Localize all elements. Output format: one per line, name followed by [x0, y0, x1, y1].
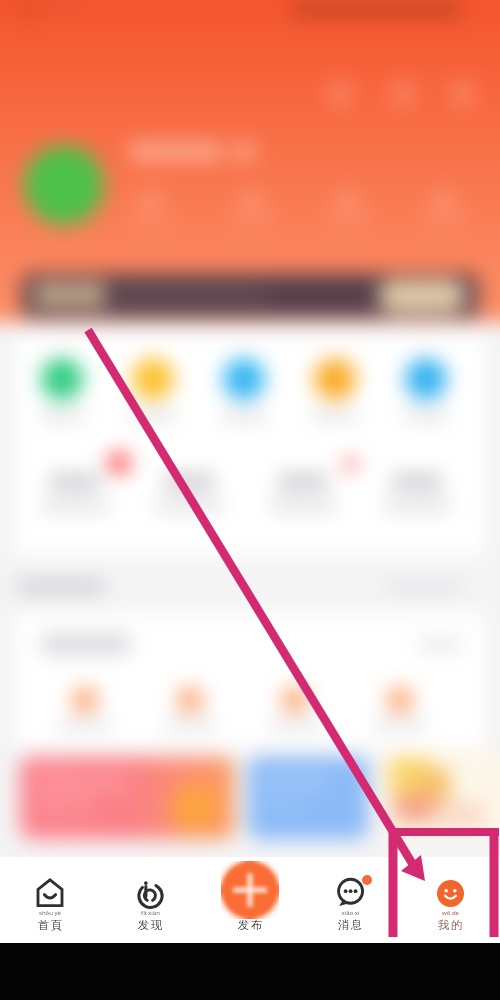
staticText: 发布: [237, 918, 263, 932]
staticText: 发现: [137, 918, 163, 932]
staticText: wǒ de: [442, 909, 459, 917]
staticText: 首頁: [37, 918, 63, 932]
staticText: fā xiàn: [141, 909, 160, 917]
staticText: 我的: [437, 918, 463, 932]
button[interactable]: fā bù: [200, 857, 300, 932]
staticText: xiāo xi: [341, 909, 360, 917]
staticText: 消息: [337, 918, 363, 932]
staticText: fā bù: [243, 909, 258, 917]
button[interactable]: shǒu yè: [0, 857, 100, 932]
staticText: shǒu yè: [39, 909, 61, 917]
button[interactable]: fā xiàn: [100, 857, 200, 932]
button[interactable]: wǒ de: [400, 857, 500, 932]
button[interactable]: xiāo xi: [300, 857, 400, 932]
button[interactable]: 发布: [212, 852, 288, 928]
